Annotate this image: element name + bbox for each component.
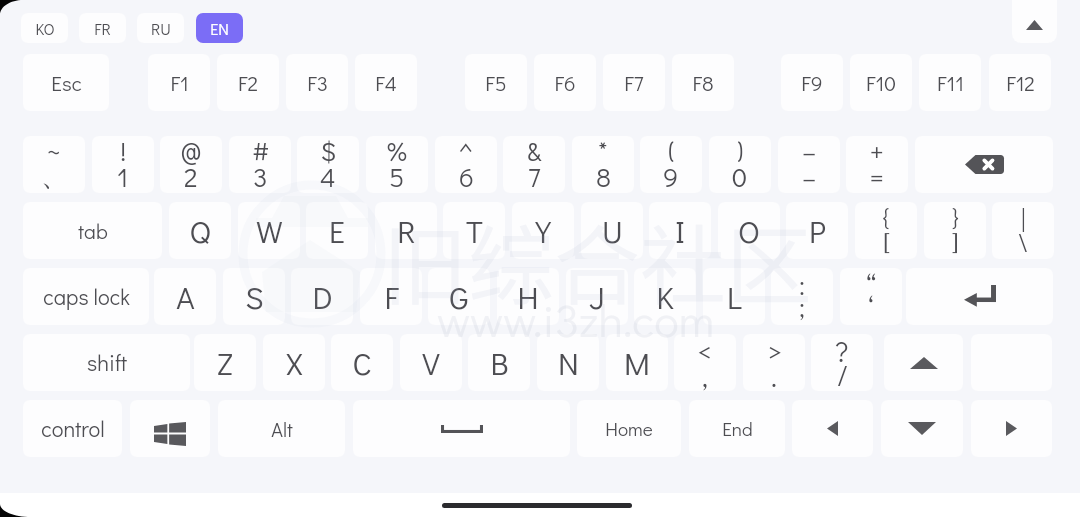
button[interactable]: Q bbox=[169, 202, 231, 259]
button[interactable]: tab bbox=[23, 202, 162, 259]
button[interactable]: T bbox=[443, 202, 505, 259]
button[interactable]: Hide keyboard bbox=[1012, 0, 1057, 43]
button[interactable]: Esc bbox=[23, 54, 109, 111]
button[interactable]: & bbox=[503, 136, 565, 193]
button[interactable]: Enter bbox=[906, 268, 1053, 325]
button[interactable]: H bbox=[497, 268, 559, 325]
button[interactable]: K bbox=[634, 268, 696, 325]
button[interactable]: Alt bbox=[218, 400, 345, 457]
button[interactable]: ^ bbox=[435, 136, 497, 193]
button[interactable]: Up bbox=[884, 334, 963, 391]
staticText: N bbox=[558, 342, 579, 383]
button[interactable]: F5 bbox=[465, 54, 527, 111]
button[interactable]: Y bbox=[512, 202, 574, 259]
button[interactable]: F12 bbox=[989, 54, 1051, 111]
staticText: 5 bbox=[389, 159, 405, 193]
button[interactable]: > bbox=[743, 334, 805, 391]
button[interactable]: Z bbox=[194, 334, 256, 391]
button[interactable]: L bbox=[703, 268, 765, 325]
button[interactable]: F3 bbox=[286, 54, 348, 111]
button[interactable]: B bbox=[468, 334, 530, 391]
staticText: O bbox=[738, 210, 760, 251]
button[interactable]: KO bbox=[21, 13, 68, 43]
button[interactable]: FR bbox=[79, 13, 126, 43]
button[interactable]: “ bbox=[840, 268, 902, 325]
button[interactable]: C bbox=[331, 334, 393, 391]
button[interactable]: P bbox=[786, 202, 848, 259]
button[interactable]: F7 bbox=[603, 54, 665, 111]
button[interactable]: D bbox=[291, 268, 353, 325]
staticText: / bbox=[837, 356, 848, 391]
button[interactable]: A bbox=[154, 268, 216, 325]
staticText: I bbox=[675, 210, 685, 251]
staticText: – bbox=[802, 136, 817, 168]
button[interactable]: ~ bbox=[23, 136, 85, 193]
button[interactable]: U bbox=[581, 202, 643, 259]
button[interactable]: < bbox=[674, 334, 736, 391]
button[interactable]: Windows bbox=[130, 400, 210, 457]
button[interactable]: F6 bbox=[534, 54, 596, 111]
button[interactable]: ! bbox=[92, 136, 154, 193]
button[interactable]: F bbox=[360, 268, 422, 325]
button[interactable]: $ bbox=[297, 136, 359, 193]
button[interactable]: Right bbox=[971, 400, 1052, 457]
button[interactable]: J bbox=[566, 268, 628, 325]
button[interactable]: control bbox=[23, 400, 122, 457]
button[interactable]: X bbox=[263, 334, 325, 391]
button[interactable]: Left bbox=[792, 400, 873, 457]
button[interactable]: F11 bbox=[919, 54, 981, 111]
staticText: End bbox=[722, 416, 753, 441]
button[interactable]: Down bbox=[881, 400, 963, 457]
button[interactable]: shift bbox=[23, 334, 190, 391]
button[interactable]: M bbox=[606, 334, 668, 391]
staticText: U bbox=[602, 210, 623, 251]
button[interactable]: Space bbox=[353, 400, 570, 457]
button[interactable]: Home bbox=[577, 400, 681, 457]
button[interactable]: F8 bbox=[672, 54, 734, 111]
button[interactable]: @ bbox=[160, 136, 222, 193]
button[interactable]: ? bbox=[811, 334, 873, 391]
button[interactable]: G bbox=[428, 268, 490, 325]
button[interactable]: caps lock bbox=[23, 268, 149, 325]
staticText: F5 bbox=[485, 69, 507, 97]
button[interactable]: I bbox=[649, 202, 711, 259]
staticText: F8 bbox=[692, 69, 714, 97]
button[interactable]: F9 bbox=[781, 54, 843, 111]
staticText: www.i3zh.com bbox=[437, 289, 715, 349]
staticText: < bbox=[698, 334, 713, 369]
button[interactable]: # bbox=[229, 136, 291, 193]
button[interactable]: Backspace bbox=[915, 136, 1053, 193]
button[interactable]: E bbox=[306, 202, 368, 259]
button[interactable]: F1 bbox=[148, 54, 210, 111]
button[interactable]: ) bbox=[709, 136, 771, 193]
button[interactable]: V bbox=[400, 334, 462, 391]
button[interactable]: F2 bbox=[217, 54, 279, 111]
button[interactable]: – bbox=[778, 136, 840, 193]
button[interactable]: * bbox=[572, 136, 634, 193]
button[interactable]: F4 bbox=[355, 54, 417, 111]
staticText: S bbox=[245, 276, 264, 317]
staticText: V bbox=[422, 342, 440, 383]
button[interactable]: RU bbox=[137, 13, 184, 43]
button[interactable]: N bbox=[537, 334, 599, 391]
button[interactable]: + bbox=[846, 136, 908, 193]
button[interactable]: O bbox=[718, 202, 780, 259]
button[interactable]: { bbox=[855, 202, 917, 259]
staticText: # bbox=[252, 136, 269, 168]
button[interactable]: S bbox=[223, 268, 285, 325]
button[interactable]: | bbox=[992, 202, 1054, 259]
button[interactable]: F10 bbox=[850, 54, 912, 111]
button[interactable]: % bbox=[366, 136, 428, 193]
button[interactable]: R bbox=[375, 202, 437, 259]
button[interactable]: } bbox=[924, 202, 986, 259]
button[interactable]: : bbox=[771, 268, 833, 325]
button[interactable]: EN bbox=[196, 13, 243, 43]
button[interactable]: End bbox=[689, 400, 785, 457]
staticText: { bbox=[883, 202, 890, 235]
staticText: RU bbox=[151, 18, 171, 39]
button[interactable]: ( bbox=[640, 136, 702, 193]
staticText: B bbox=[490, 342, 509, 383]
staticText: F10 bbox=[866, 69, 896, 97]
button[interactable]: W bbox=[238, 202, 300, 259]
